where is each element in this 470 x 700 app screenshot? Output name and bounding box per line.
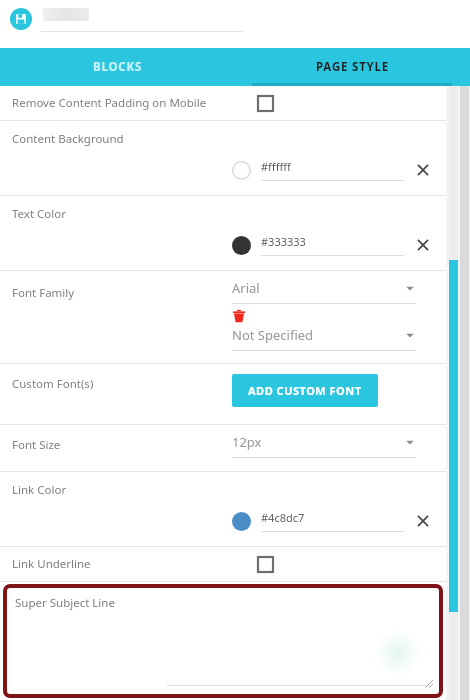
button[interactable]: PAGE STYLE	[235, 48, 470, 86]
button[interactable]: ADD CUSTOM FONT	[232, 374, 378, 407]
staticText: 12px	[232, 433, 404, 451]
staticText: Link Color	[12, 482, 67, 498]
button[interactable]: Remove Content Padding on Mobile	[0, 86, 446, 120]
staticText: Content Background	[12, 131, 124, 147]
button[interactable]: Link Underline	[0, 547, 446, 581]
button[interactable]: Clear colour	[412, 510, 434, 532]
button[interactable]: #333333	[232, 234, 434, 256]
button[interactable]: 12px	[232, 433, 416, 458]
staticText: PAGE STYLE	[316, 59, 390, 75]
button[interactable]: Save	[10, 8, 32, 30]
staticText: #333333	[261, 234, 306, 249]
staticText: BLOCKS	[93, 59, 143, 75]
button[interactable]: Delete font	[232, 309, 246, 323]
button[interactable]: BLOCKS	[0, 48, 235, 86]
button[interactable]: Toggle checkbox	[257, 95, 274, 112]
button[interactable]: Arial	[232, 279, 416, 304]
button[interactable]: #4c8dc7	[232, 510, 434, 532]
staticText: Font Family	[12, 285, 75, 301]
button[interactable]: Not Specified	[232, 326, 416, 351]
staticText: Text Color	[12, 206, 66, 222]
button[interactable]: Super Subject Line	[7, 588, 439, 694]
button[interactable]: #ffffff	[232, 159, 434, 181]
staticText: #ffffff	[261, 159, 291, 174]
button[interactable]: Toggle checkbox	[257, 556, 274, 573]
staticText: #4c8dc7	[261, 510, 305, 525]
staticText: Remove Content Padding on Mobile	[12, 95, 207, 111]
staticText: Super Subject Line	[15, 595, 115, 611]
staticText: Not Specified	[232, 326, 404, 344]
staticText: Custom Font(s)	[12, 376, 94, 392]
staticText: Link Underline	[12, 556, 91, 572]
button[interactable]: Clear colour	[412, 234, 434, 256]
button[interactable]: Clear colour	[412, 159, 434, 181]
staticText: Arial	[232, 279, 404, 297]
staticText: Font Size	[12, 437, 61, 453]
staticText: ADD CUSTOM FONT	[248, 383, 362, 398]
